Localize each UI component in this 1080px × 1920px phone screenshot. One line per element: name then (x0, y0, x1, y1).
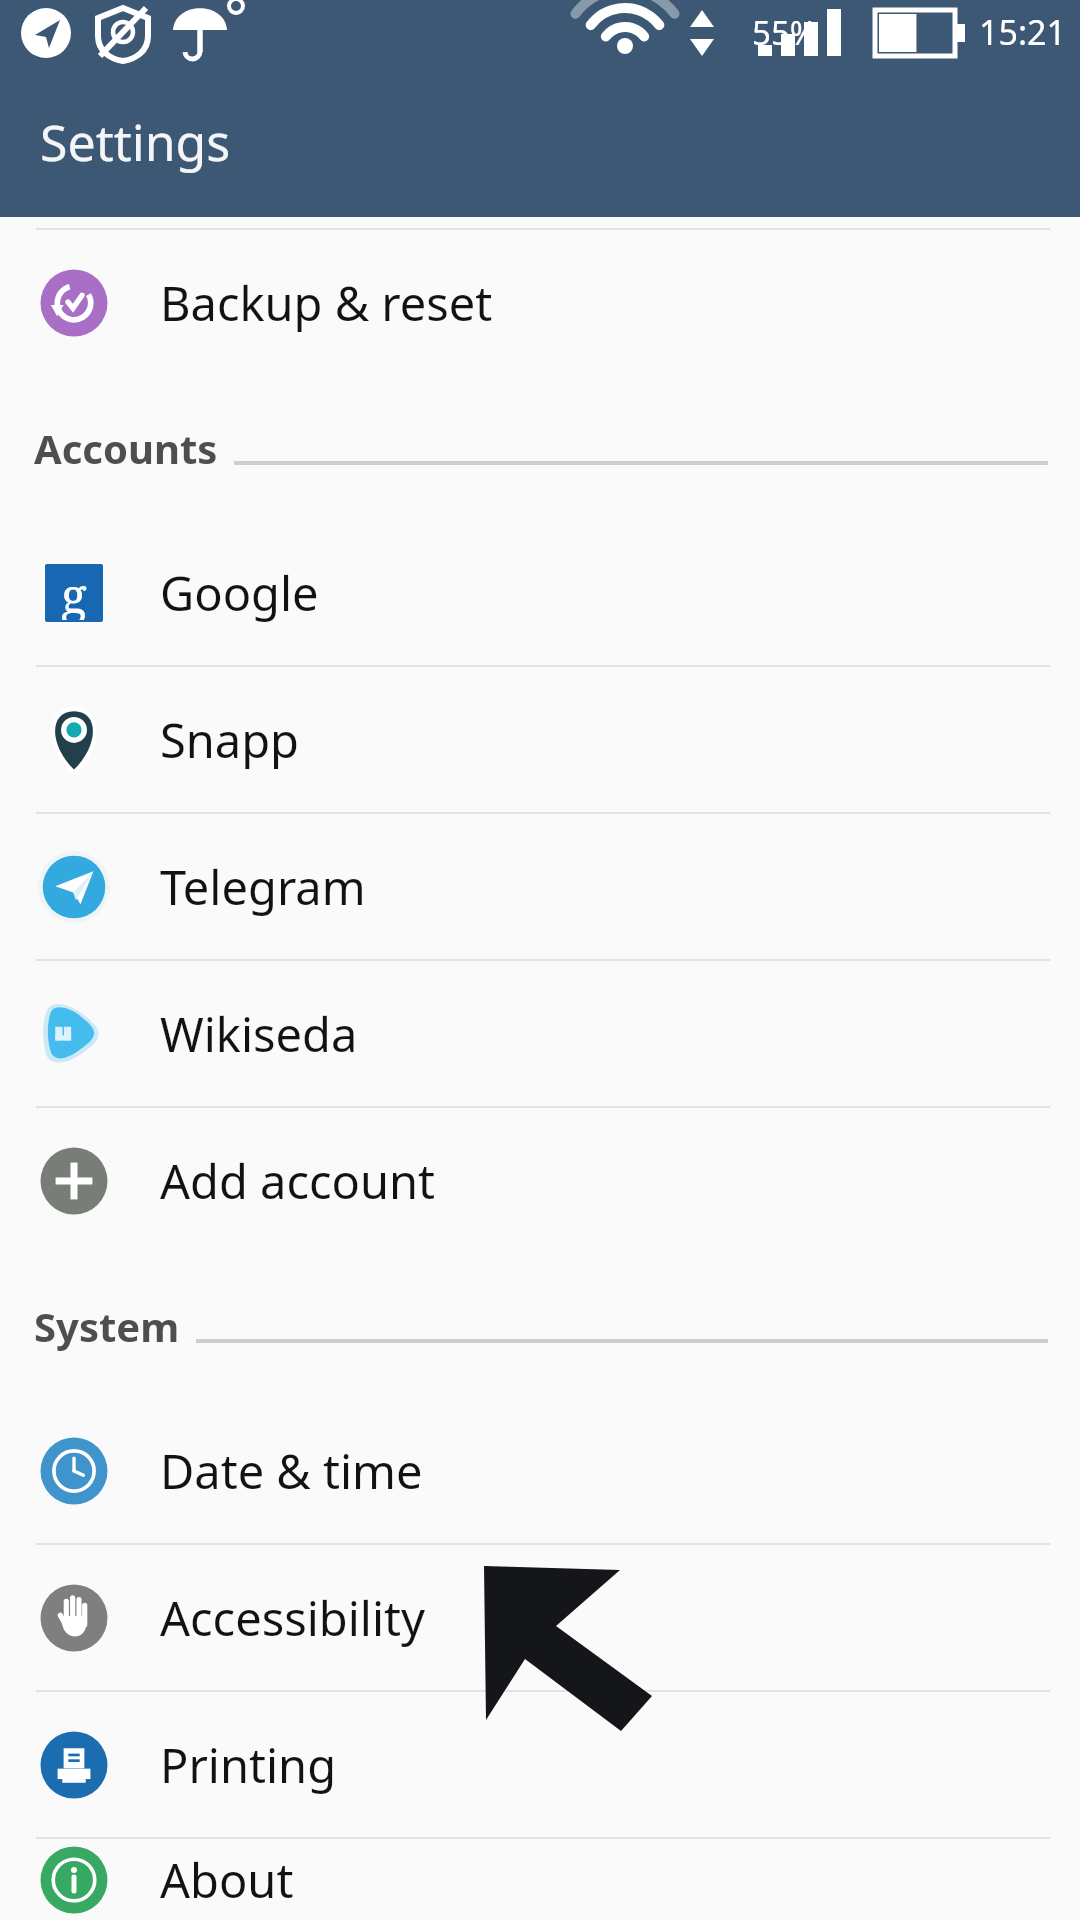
staticText: 55% (752, 10, 818, 55)
staticText: Printing (160, 1733, 337, 1797)
button[interactable]: About (0, 1839, 1080, 1920)
staticText: Snapp (160, 708, 300, 772)
button[interactable]: Add account (0, 1108, 1080, 1253)
staticText: Google (160, 561, 319, 625)
staticText: 15:21 (979, 9, 1066, 55)
other: Add account (38, 1145, 110, 1217)
staticText: Wikiseda (160, 1002, 358, 1066)
staticText: Accounts (34, 421, 218, 475)
staticText: About (160, 1848, 294, 1912)
button[interactable]: Date & time (0, 1398, 1080, 1543)
button[interactable]: Accessibility (0, 1545, 1080, 1690)
staticText: g (61, 564, 87, 620)
staticText: Backup & reset (160, 271, 493, 335)
button[interactable]: Printing (0, 1692, 1080, 1837)
staticText: Settings (40, 108, 231, 176)
staticText: Accessibility (160, 1586, 426, 1650)
button[interactable]: Telegram (0, 814, 1080, 959)
staticText: System (34, 1299, 180, 1353)
staticText: Date & time (160, 1439, 423, 1503)
button[interactable]: Backup & reset (0, 230, 1080, 375)
staticText: Telegram (160, 855, 366, 919)
button[interactable]: Snapp (0, 667, 1080, 812)
button[interactable]: g (0, 520, 1080, 665)
staticText: Add account (160, 1149, 436, 1213)
button[interactable]: Wikiseda (0, 961, 1080, 1106)
